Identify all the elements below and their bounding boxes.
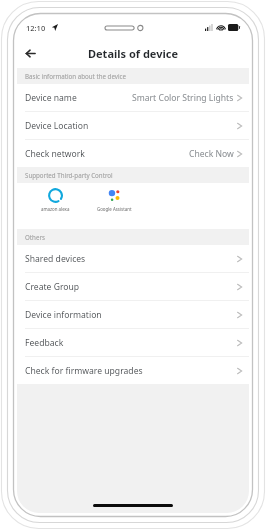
staticText: Basic information about the device (25, 72, 126, 80)
staticText: Smart Color String Lights (132, 92, 234, 104)
staticText: Shared devices (25, 253, 86, 265)
staticText: Supported Third-party Control (25, 171, 113, 179)
staticText: Feedback (25, 337, 64, 349)
staticText: Google Assistant (97, 206, 132, 212)
staticText: 12:10 (26, 23, 46, 33)
staticText: Device information (25, 309, 102, 321)
button[interactable]: Device name (17, 84, 249, 112)
button[interactable]: Device information (17, 301, 249, 329)
staticText: Device name (25, 92, 77, 104)
staticText: Others (25, 233, 45, 241)
button[interactable]: Create Group (17, 273, 249, 301)
staticText: Check Now (189, 148, 234, 160)
button[interactable]: Device Location (17, 112, 249, 140)
button[interactable]: Check network (17, 140, 249, 167)
staticText: Details of device (88, 46, 179, 61)
button[interactable]: Google Assistant (89, 188, 139, 212)
staticText: Device Location (25, 120, 89, 132)
staticText: amazon alexa (41, 206, 70, 212)
button[interactable]: amazon alexa (31, 188, 79, 212)
button[interactable]: Check for firmware upgrades (17, 357, 249, 384)
staticText: Check network (25, 148, 85, 160)
button[interactable]: Feedback (17, 329, 249, 357)
staticText: Create Group (25, 281, 80, 293)
button[interactable]: Back (17, 40, 43, 66)
button[interactable]: Shared devices (17, 245, 249, 273)
staticText: Check for firmware upgrades (25, 365, 143, 377)
